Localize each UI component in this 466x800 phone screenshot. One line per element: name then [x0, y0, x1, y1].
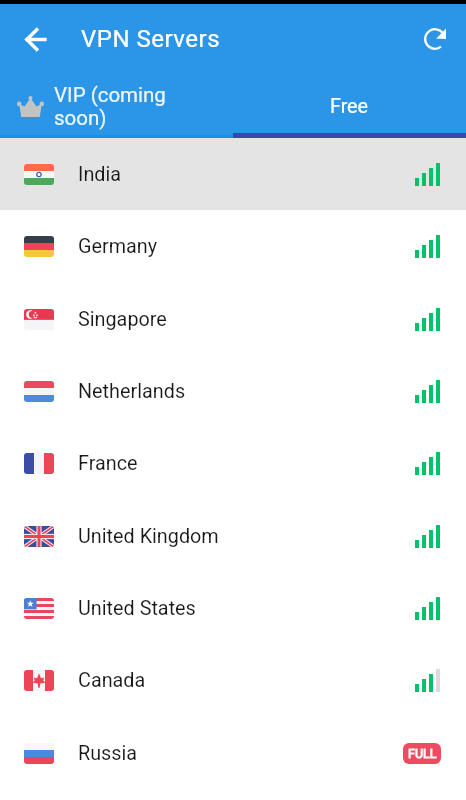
staticText: VPN Servers: [81, 25, 221, 53]
staticText: Canada: [78, 669, 146, 692]
button[interactable]: Russia: [0, 717, 466, 789]
staticText: Singapore: [78, 308, 167, 331]
staticText: France: [78, 452, 138, 475]
staticText: United States: [78, 597, 196, 620]
button[interactable]: United States: [0, 572, 466, 644]
staticText: VIP (coming soon): [54, 83, 173, 130]
button[interactable]: Netherlands: [0, 355, 466, 427]
button[interactable]: Free: [233, 74, 466, 138]
button[interactable]: France: [0, 427, 466, 500]
button[interactable]: Singapore: [0, 283, 466, 355]
staticText: India: [78, 163, 122, 186]
button[interactable]: Back: [14, 17, 58, 61]
staticText: United Kingdom: [78, 525, 219, 548]
button[interactable]: VIP (coming soon): [0, 74, 233, 138]
staticText: Free: [330, 95, 369, 118]
button[interactable]: India: [0, 138, 466, 210]
button[interactable]: United Kingdom: [0, 500, 466, 572]
staticText: FULL: [408, 746, 437, 761]
button[interactable]: Refresh: [413, 17, 457, 61]
staticText: Germany: [78, 235, 158, 258]
staticText: Russia: [78, 742, 138, 765]
button[interactable]: Canada: [0, 644, 466, 717]
staticText: Netherlands: [78, 380, 186, 403]
button[interactable]: Germany: [0, 210, 466, 283]
